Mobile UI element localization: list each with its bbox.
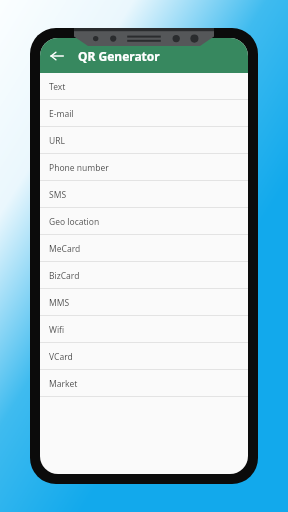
staticText: VCard — [49, 351, 73, 363]
button[interactable]: Back — [44, 43, 70, 69]
staticText: Phone number — [49, 162, 109, 174]
button[interactable]: VCard — [40, 343, 248, 370]
staticText: MeCard — [49, 243, 81, 255]
button[interactable]: SMS — [40, 181, 248, 208]
button[interactable]: Market — [40, 370, 248, 397]
staticText: Text — [49, 81, 66, 93]
staticText: MMS — [49, 297, 70, 309]
button[interactable]: MeCard — [40, 235, 248, 262]
button[interactable]: Wifi — [40, 316, 248, 343]
button[interactable]: Text — [40, 73, 248, 100]
staticText: Wifi — [49, 324, 65, 336]
button[interactable]: MMS — [40, 289, 248, 316]
staticText: QR Generator — [78, 48, 160, 64]
button[interactable]: BizCard — [40, 262, 248, 289]
staticText: URL — [49, 135, 65, 147]
staticText: E-mail — [49, 108, 74, 120]
staticText: Geo location — [49, 216, 100, 228]
button[interactable]: Geo location — [40, 208, 248, 235]
staticText: BizCard — [49, 270, 80, 282]
button[interactable]: Phone number — [40, 154, 248, 181]
button[interactable]: E-mail — [40, 100, 248, 127]
staticText: Market — [49, 378, 78, 390]
button[interactable]: URL — [40, 127, 248, 154]
staticText: SMS — [49, 189, 67, 201]
